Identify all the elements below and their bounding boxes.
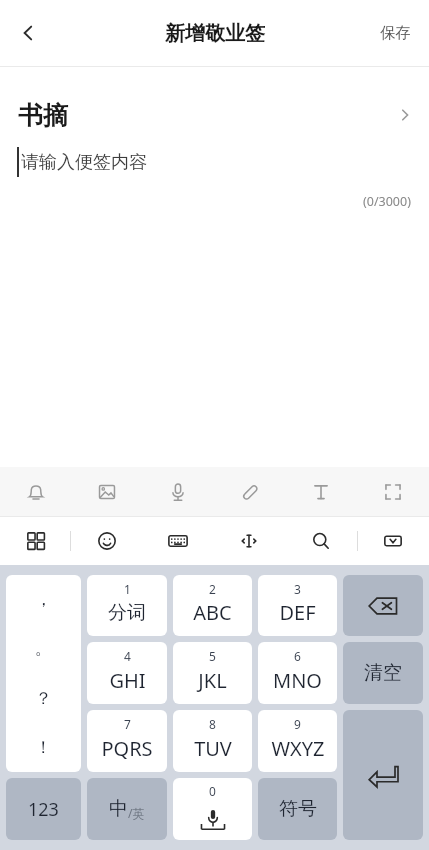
staticText: 清空 (364, 661, 402, 685)
staticText: /英 (128, 805, 145, 821)
button[interactable]: Enter (343, 710, 423, 840)
button[interactable]: Search (285, 517, 357, 565)
button[interactable]: 8 (173, 710, 252, 772)
button[interactable]: Voice input (173, 778, 252, 840)
staticText: 。 (35, 638, 52, 659)
button[interactable]: 9 (258, 710, 337, 772)
staticText: 7 (124, 716, 131, 732)
button[interactable]: 中 (87, 778, 167, 840)
button[interactable]: Voice (142, 467, 213, 516)
staticText: 请输入便签内容 (21, 151, 147, 174)
button[interactable]: Emoji (71, 517, 142, 565)
button[interactable]: 123 (6, 778, 81, 840)
staticText: 分词 (108, 601, 146, 625)
button[interactable]: Attachment (213, 467, 285, 516)
button[interactable]: Keyboard (142, 517, 213, 565)
staticText: ABC (193, 599, 232, 626)
button[interactable]: 4 (87, 642, 167, 704)
staticText: 6 (294, 648, 301, 664)
button[interactable]: Backspace (343, 575, 423, 636)
staticText: JKL (198, 667, 227, 694)
button[interactable]: Back (0, 0, 56, 66)
button[interactable]: Keyboard layouts (0, 517, 71, 565)
staticText: DEF (279, 599, 316, 626)
staticText: 书摘 (18, 100, 68, 131)
staticText: (0/3000) (363, 193, 411, 210)
staticText: PQRS (101, 735, 153, 762)
button[interactable]: 3 (258, 575, 337, 636)
staticText: 123 (28, 797, 59, 822)
button[interactable]: Cursor (213, 517, 285, 565)
button[interactable]: ， (6, 575, 81, 772)
staticText: 8 (209, 716, 216, 732)
staticText: GHI (109, 667, 146, 694)
button[interactable]: 书摘 (0, 91, 429, 139)
staticText: MNO (273, 667, 322, 694)
button[interactable]: Text style (285, 467, 357, 516)
staticText: 符号 (279, 797, 317, 821)
button[interactable]: 2 (173, 575, 252, 636)
button[interactable]: 1 (87, 575, 167, 636)
staticText: 中 (109, 797, 128, 821)
staticText: WXYZ (271, 735, 325, 762)
button[interactable]: 保存 (362, 0, 429, 66)
button[interactable]: Hide keyboard (357, 517, 429, 565)
staticText: ， (35, 589, 52, 610)
button[interactable]: 5 (173, 642, 252, 704)
staticText: 5 (209, 648, 216, 664)
button[interactable]: 清空 (343, 642, 423, 704)
button[interactable]: 7 (87, 710, 167, 772)
staticText: 新增敬业签 (165, 21, 265, 46)
staticText: ！ (35, 737, 52, 758)
staticText: 3 (294, 581, 301, 597)
button[interactable]: 符号 (258, 778, 337, 840)
staticText: TUV (194, 735, 232, 762)
staticText: 保存 (380, 23, 411, 43)
staticText: 1 (124, 581, 131, 597)
staticText: 4 (124, 648, 131, 664)
staticText: 9 (294, 716, 301, 732)
staticText: 2 (209, 581, 216, 597)
staticText: ？ (35, 688, 52, 709)
button[interactable]: Reminder (0, 467, 71, 516)
button[interactable]: Image (71, 467, 142, 516)
staticText: 0 (209, 783, 216, 799)
button[interactable]: 6 (258, 642, 337, 704)
button[interactable]: Fullscreen (357, 467, 429, 516)
